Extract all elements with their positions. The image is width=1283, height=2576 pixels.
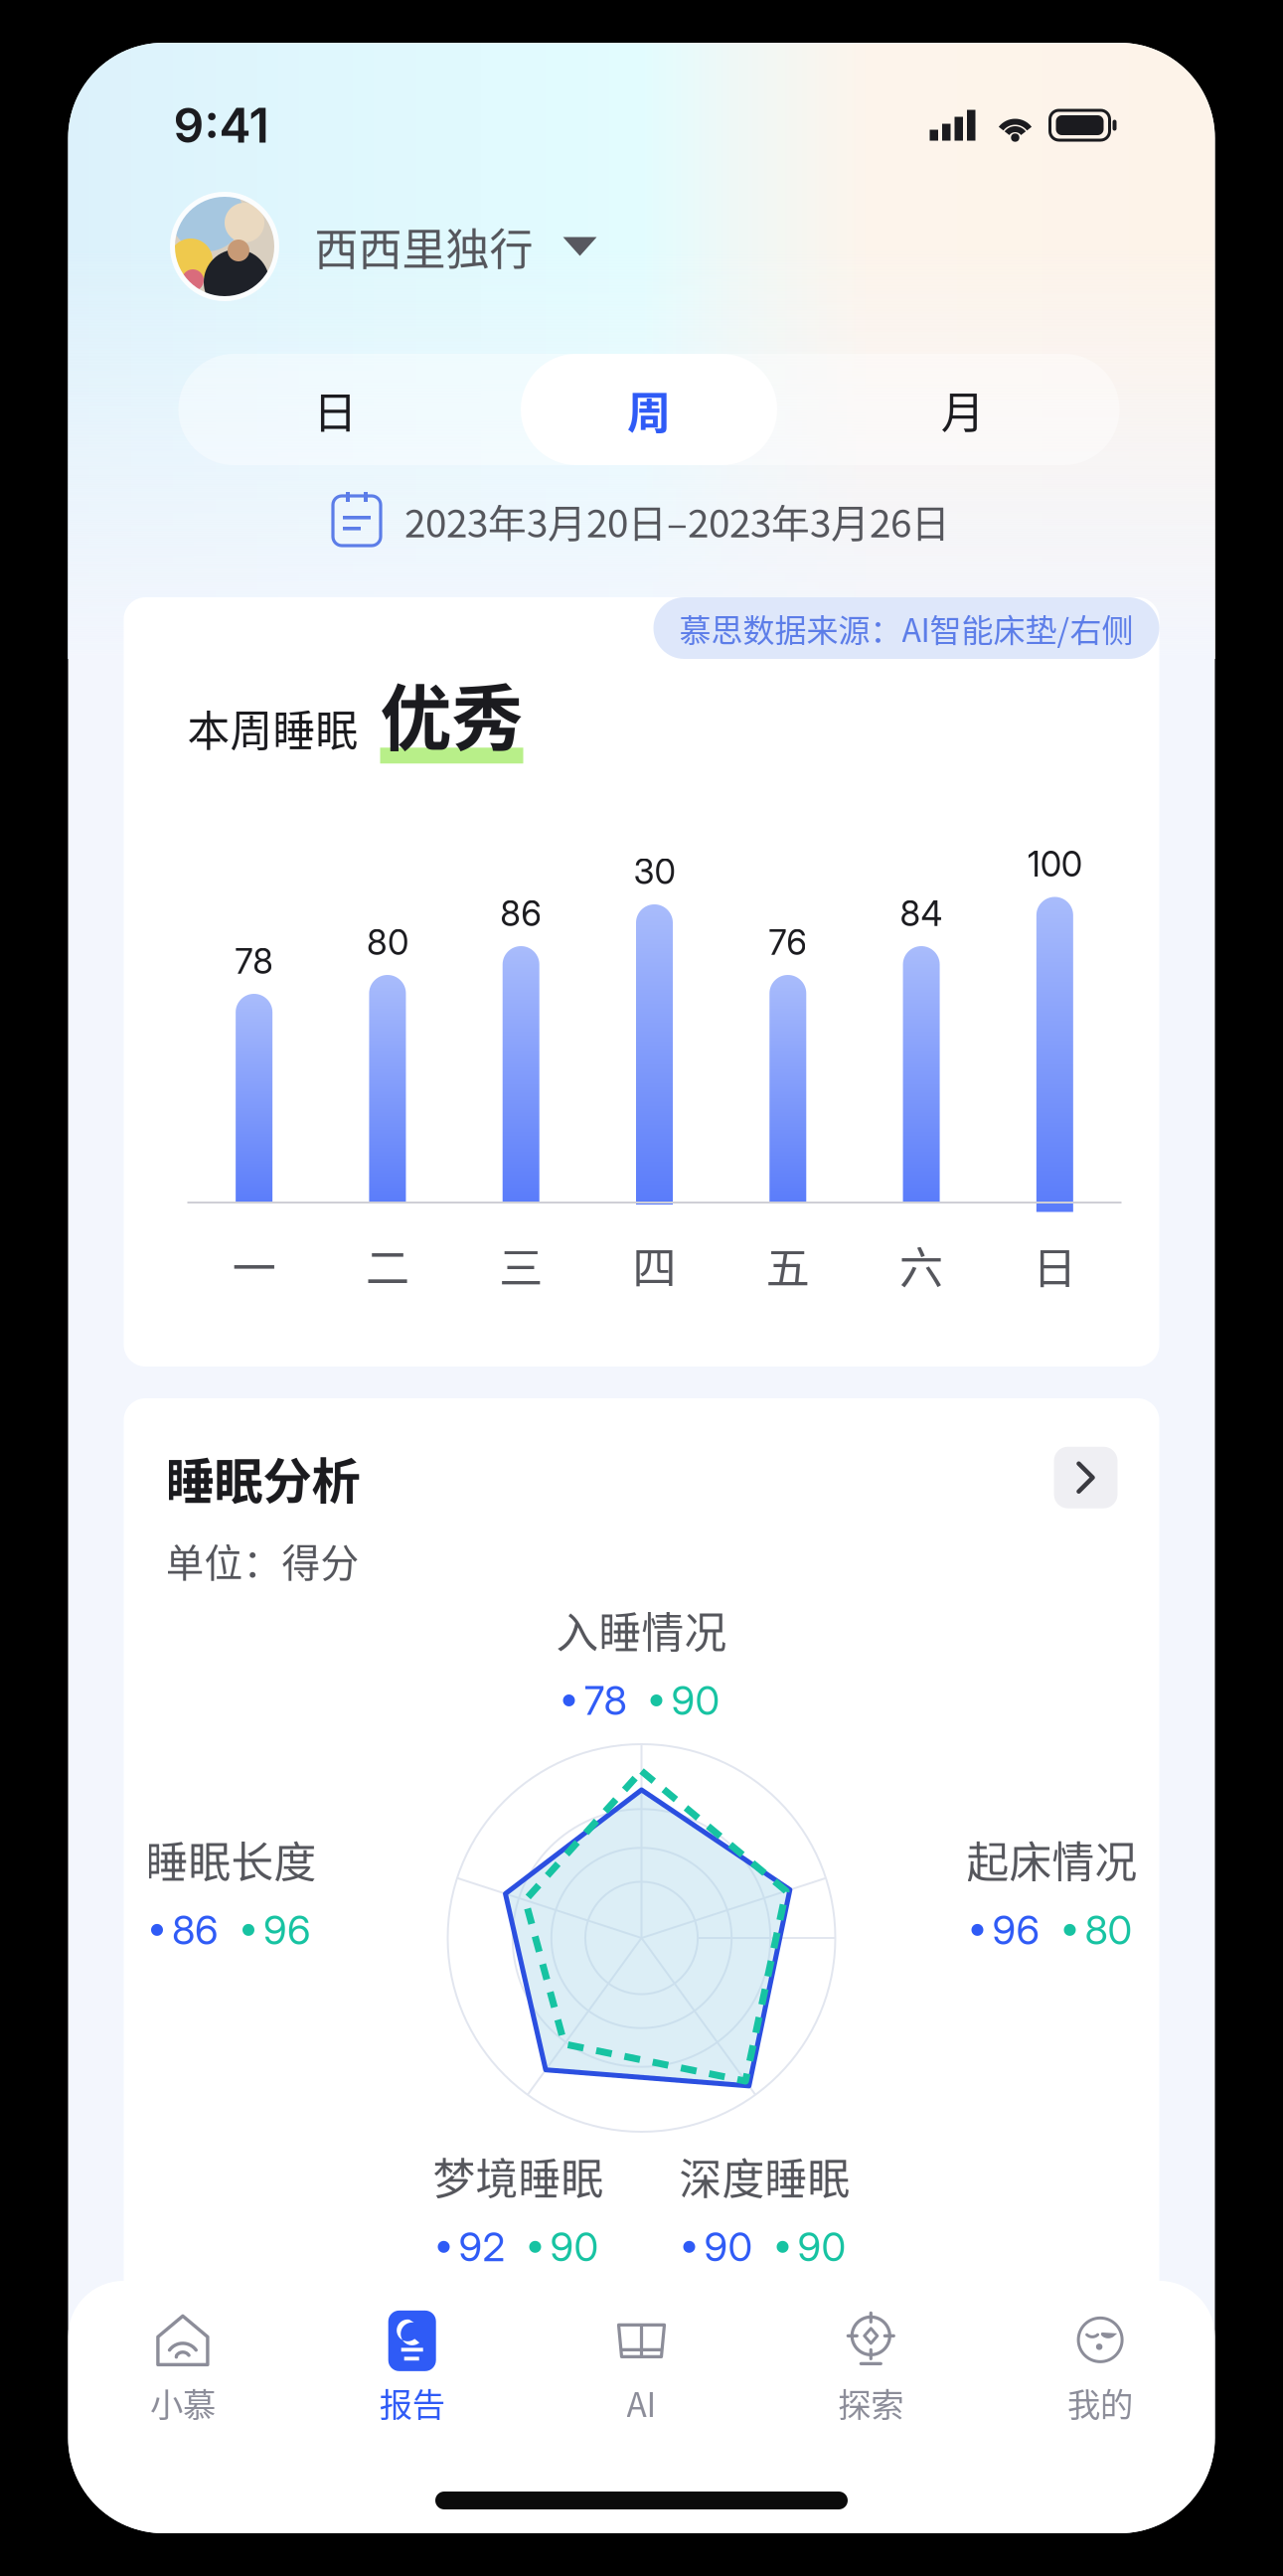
staticText: 日 [313,378,357,441]
staticText: 梦境睡眠 [433,2145,604,2207]
button[interactable]: 周 [492,354,806,465]
staticText: 78 [235,940,273,982]
staticText: 优秀 [380,661,523,765]
staticText: 周 [627,378,671,441]
staticText: 西西里独行 [315,215,533,278]
staticText: 起床情况 [966,1829,1137,1890]
staticText: 月 [941,378,985,441]
staticText: 30 [634,851,675,892]
staticText: 二 [366,1233,409,1297]
button[interactable]: 探索 [756,2310,986,2427]
staticText: 一 [232,1233,276,1297]
staticText: 入睡情况 [556,1599,727,1660]
staticText: 96 [263,1906,311,1954]
staticText: 日 [1033,1233,1077,1297]
button[interactable]: 2023年3月20日–2023年3月26日 [333,490,950,552]
staticText: 睡眠长度 [146,1829,317,1890]
staticText: 2023年3月20日–2023年3月26日 [404,493,950,549]
staticText: 90 [798,2223,846,2271]
button[interactable]: 日 [178,355,492,464]
staticText: 本周睡眠 [187,697,358,759]
staticText: 五 [766,1233,810,1297]
staticText: 深度睡眠 [679,2145,850,2207]
button[interactable]: 睡眠分析详情 [1054,1447,1118,1508]
staticText: 90 [671,1676,720,1724]
staticText: 六 [899,1233,943,1297]
staticText: 86 [500,893,542,934]
button[interactable]: 月 [806,355,1120,464]
staticText: 探索 [838,2379,904,2427]
staticText: 睡眠分析 [165,1442,360,1513]
staticText: 100 [1027,843,1082,885]
button[interactable]: 小慕 [68,2310,297,2427]
staticText: 我的 [1067,2379,1133,2427]
staticText: 四 [633,1233,676,1297]
staticText: 慕思数据来源：AI智能床垫/右侧 [679,605,1133,651]
staticText: 80 [1085,1906,1132,1954]
button[interactable]: 我的 [986,2310,1215,2427]
staticText: 84 [900,893,943,934]
button[interactable]: 西西里独行 [172,192,597,301]
staticText: 三 [499,1233,543,1297]
staticText: 报告 [379,2379,445,2427]
staticText: 90 [550,2223,599,2271]
staticText: 92 [459,2223,505,2271]
staticText: 9:41 [173,96,269,154]
staticText: 96 [992,1906,1040,1954]
staticText: 76 [769,921,807,963]
staticText: 单位：得分 [165,1532,359,1588]
staticText: 小慕 [150,2379,216,2427]
staticText: 90 [704,2223,753,2271]
staticText: 86 [172,1906,219,1954]
button[interactable]: 报告 [297,2310,527,2427]
staticText: 80 [367,921,408,963]
staticText: 78 [584,1676,627,1724]
button[interactable]: AI [527,2310,756,2427]
staticText: AI [627,2379,656,2427]
